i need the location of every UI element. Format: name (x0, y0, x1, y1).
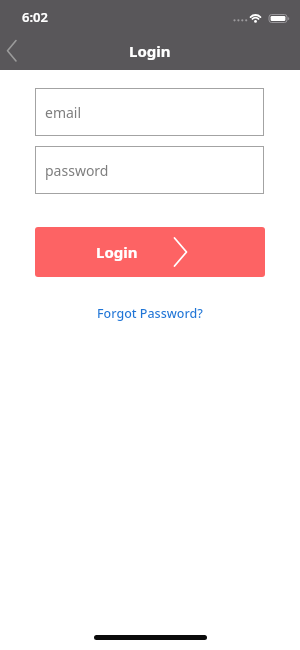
button[interactable]: Login (35, 227, 265, 277)
button[interactable]: password (35, 146, 264, 194)
staticText: password (45, 161, 109, 180)
staticText: Login (96, 242, 138, 262)
staticText: 6:02 (22, 8, 48, 26)
staticText: Forgot Password? (97, 305, 203, 322)
staticText: Login (129, 41, 171, 61)
button[interactable]: Forgot Password? (97, 305, 203, 322)
staticText: email (45, 103, 82, 122)
button[interactable]: email (35, 88, 264, 136)
button[interactable] (0, 34, 30, 68)
